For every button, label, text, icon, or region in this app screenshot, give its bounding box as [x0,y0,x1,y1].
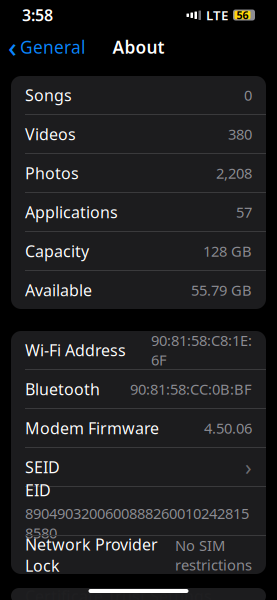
button[interactable]: EID [11,487,266,535]
staticText: 56 [236,8,248,22]
staticText: 3:58 [22,4,53,26]
staticText: Available [25,279,92,301]
staticText: Photos [25,162,79,184]
button[interactable]: Songs [11,76,266,114]
staticText: Applications [25,201,118,223]
staticText: 57 [236,202,252,222]
button[interactable]: Applications [11,193,266,231]
staticText: General [20,35,85,58]
staticText: 4.50.06 [204,418,252,438]
staticText: Songs [25,84,72,106]
button[interactable]: SEID [11,448,266,486]
staticText: SEID [25,456,60,478]
staticText: Certificate Trust Settings [25,585,212,600]
staticText: Bluetooth [25,378,100,400]
staticText: Videos [25,123,76,145]
staticText: 2,208 [216,163,252,183]
button[interactable]: Capacity [11,232,266,270]
staticText: 380 [228,124,252,144]
staticText: LTE [206,6,228,24]
staticText: Wi-Fi Address [25,339,126,361]
staticText: About [112,35,164,58]
staticText: Capacity [25,240,89,262]
staticText: 90:81:58:CC:0B:BF [130,379,252,399]
button[interactable]: Photos [11,154,266,192]
staticText: Modem Firmware [25,417,159,439]
staticText: 90:81:58:C8:1E:6F [151,330,252,369]
staticText: No SIM restrictions [175,535,252,574]
staticText: 128 GB [203,241,252,261]
button[interactable]: Network Provider Lock [11,536,266,574]
button[interactable]: Bluetooth [11,370,266,408]
button[interactable]: Videos [11,115,266,153]
staticText: EID [25,479,51,501]
staticText: 55.79 GB [191,280,252,300]
staticText: 0 [244,85,252,105]
staticText: 89049032006008882600102428158580 [25,504,249,543]
staticText: Network Provider Lock [25,534,158,576]
button[interactable]: Available [11,271,266,309]
staticText: › [245,453,252,481]
button[interactable]: ‹ [0,31,93,63]
staticText: ‹ [8,29,17,65]
button[interactable]: Modem Firmware [11,409,266,447]
button[interactable]: Wi-Fi Address [11,331,266,369]
